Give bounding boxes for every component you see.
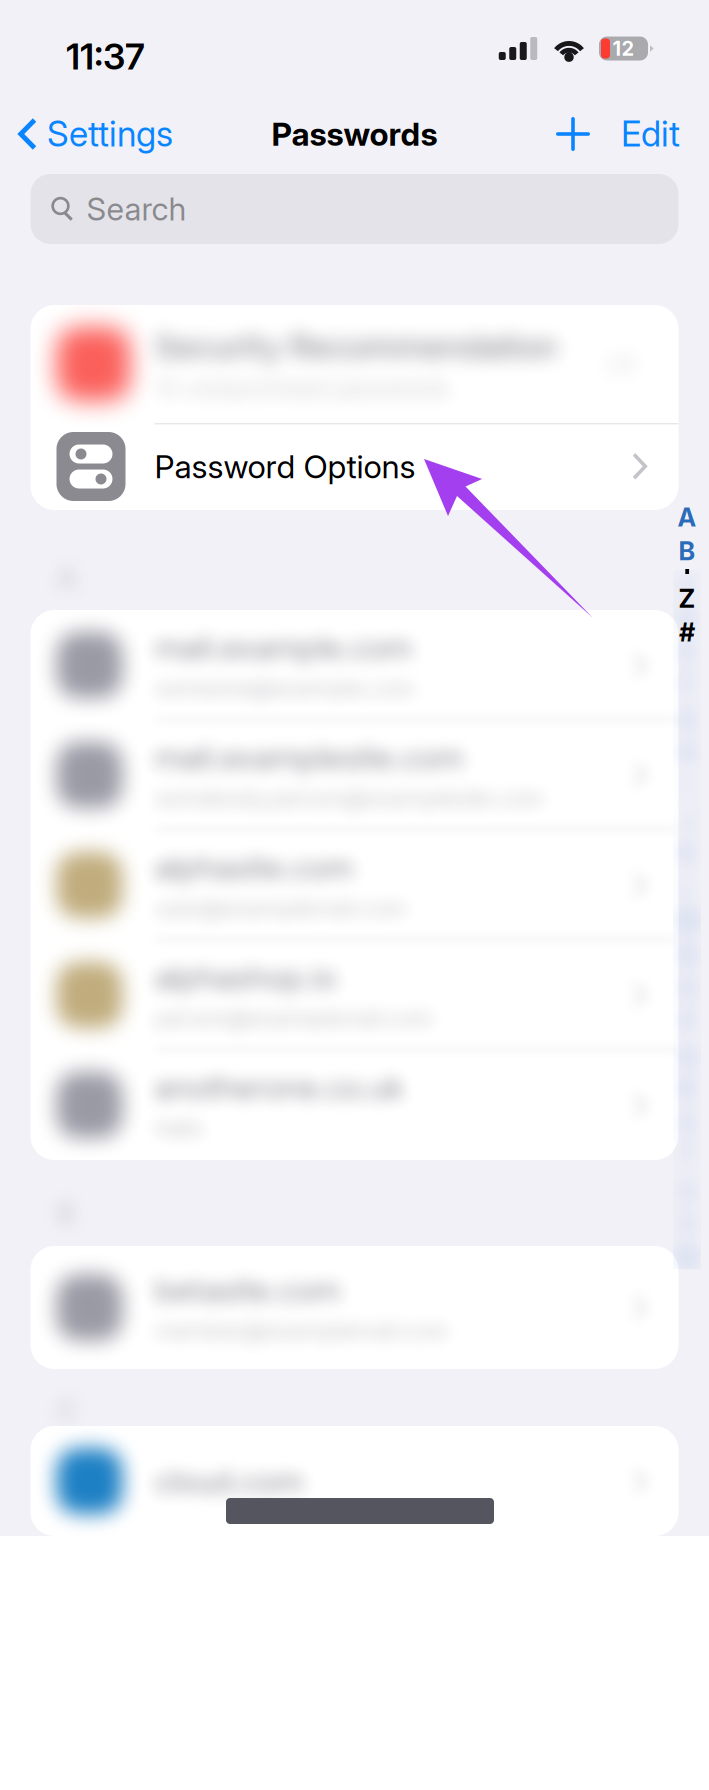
- staticText: anotherone.co.uk: [154, 308, 404, 347]
- staticText: X: [678, 516, 696, 547]
- staticText: somebody.person@examplesite.com: [154, 25, 544, 52]
- staticText: alphasite.com: [154, 88, 353, 127]
- staticText: A: [677, 502, 696, 533]
- staticText: Settings: [47, 113, 173, 155]
- button[interactable]: Edit: [621, 104, 709, 164]
- button[interactable]: Add Password: [547, 108, 599, 160]
- staticText: hello: [154, 355, 203, 382]
- staticText: Search: [86, 190, 186, 228]
- staticText: Y: [678, 550, 696, 580]
- staticText: W: [674, 482, 700, 513]
- staticText: user@examplemail.com: [154, 135, 407, 162]
- staticText: 12: [612, 36, 634, 61]
- staticText: #: [679, 617, 695, 648]
- staticText: alphashop.io: [154, 198, 336, 237]
- staticText: Passwords: [271, 115, 437, 153]
- staticText: Edit: [621, 113, 680, 155]
- staticText: Z: [678, 583, 695, 614]
- button[interactable]: Settings: [0, 104, 173, 164]
- button[interactable]: Password Options: [30, 423, 678, 510]
- staticText: M: [675, 146, 698, 176]
- staticText: 11:37: [66, 35, 145, 78]
- staticText: B: [678, 536, 695, 566]
- staticText: B: [56, 436, 75, 471]
- button[interactable]: Search: [30, 174, 678, 244]
- staticText: Password Options: [154, 447, 415, 486]
- staticText: C: [56, 633, 77, 668]
